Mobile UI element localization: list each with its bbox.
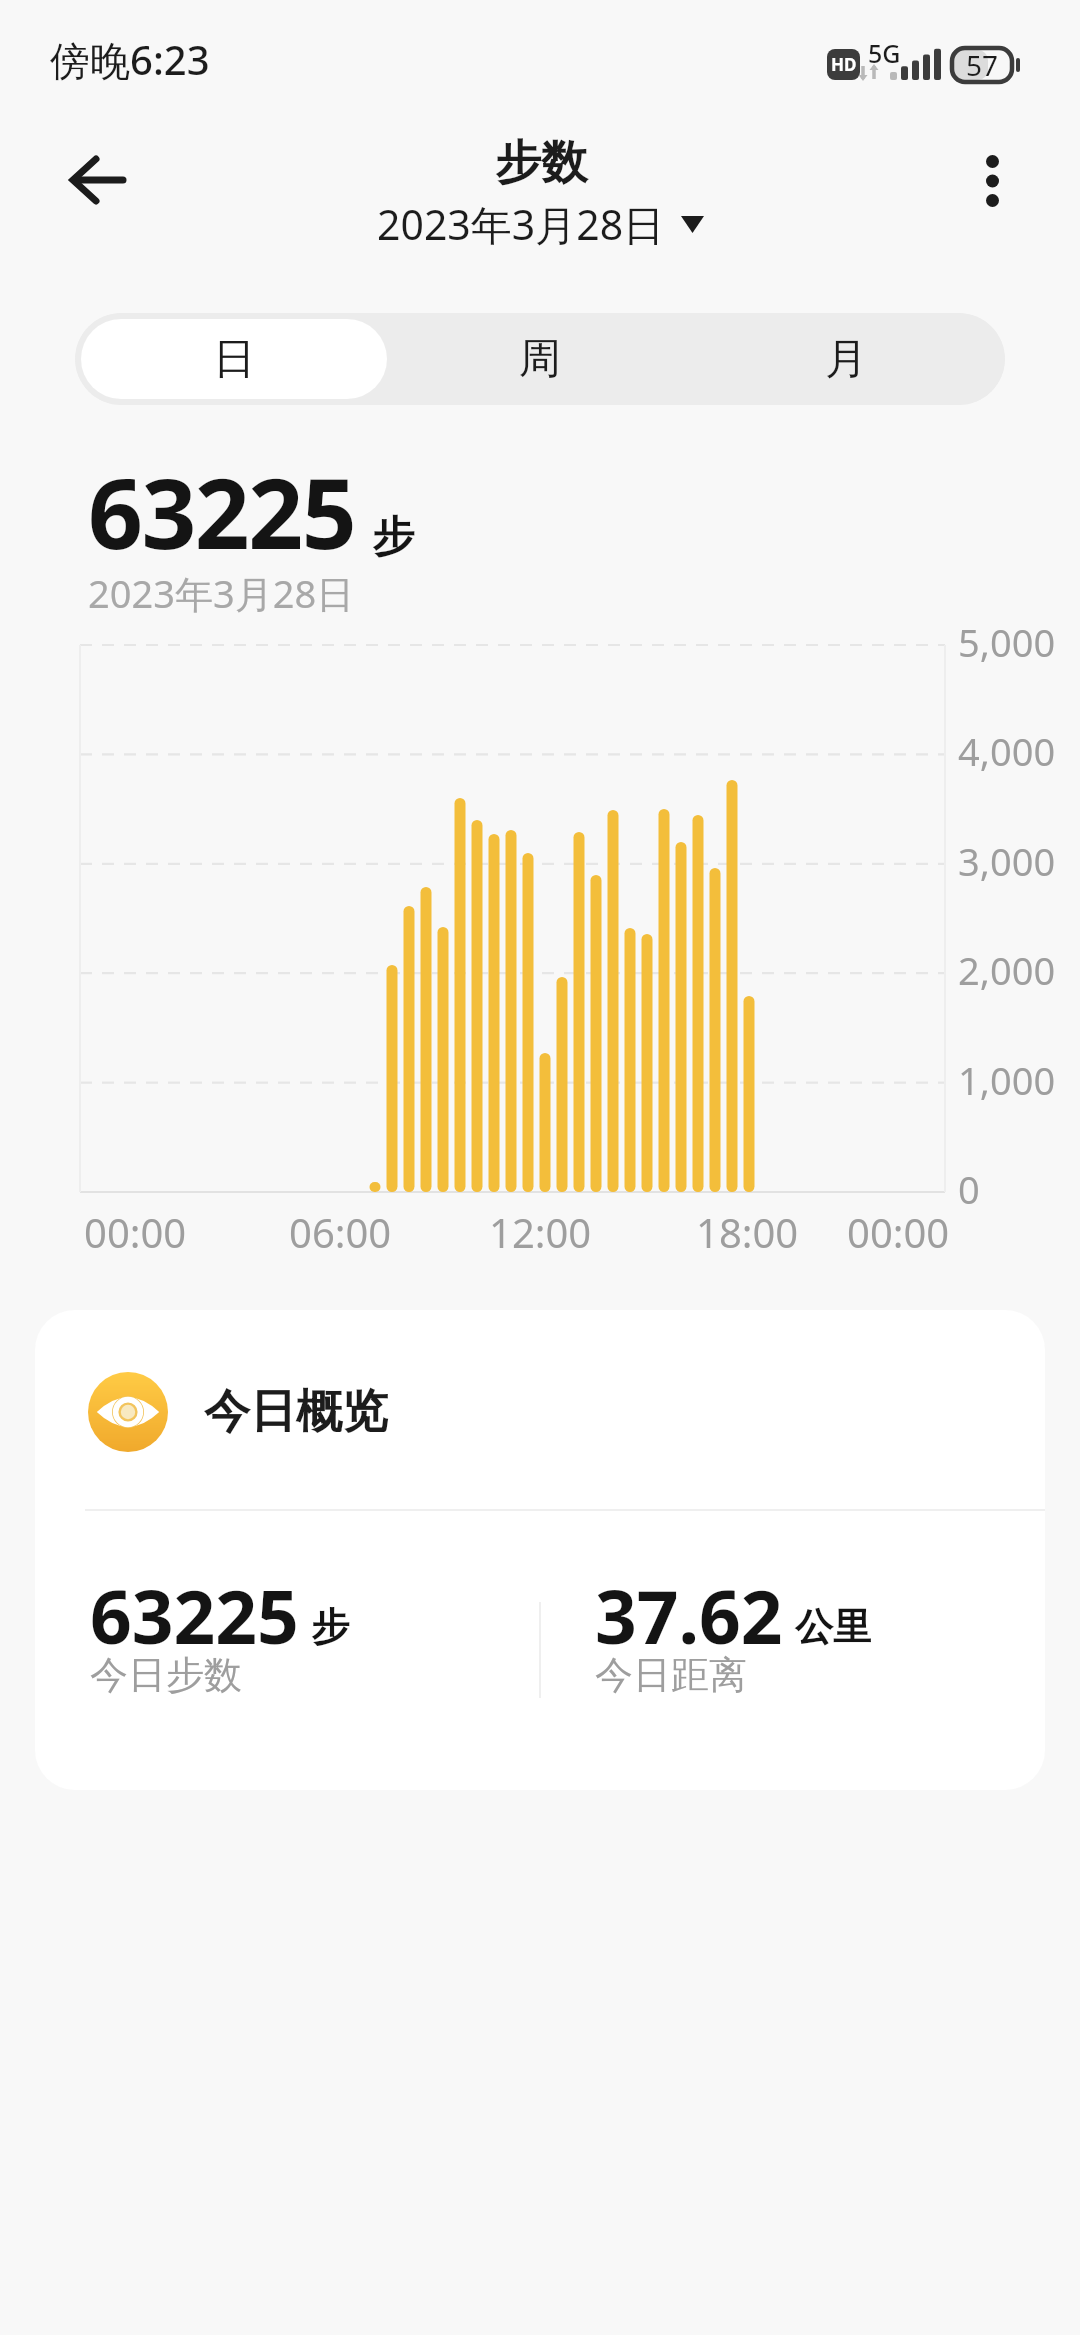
staticText: 3,000 bbox=[958, 835, 1056, 887]
staticText: 00:00 bbox=[847, 1205, 950, 1259]
staticText: 63225 bbox=[88, 446, 356, 577]
staticText: 57 bbox=[966, 46, 999, 84]
staticText: 2,000 bbox=[958, 944, 1056, 996]
staticText: 5,000 bbox=[958, 616, 1056, 668]
staticText: 5G bbox=[868, 36, 901, 70]
staticText: 月 bbox=[825, 333, 867, 386]
button[interactable]: 2023年3月28日 bbox=[377, 196, 704, 252]
button[interactable] bbox=[966, 155, 1018, 207]
staticText: 0 bbox=[958, 1163, 980, 1215]
staticText: 06:00 bbox=[289, 1205, 392, 1259]
staticText: 12:00 bbox=[489, 1205, 592, 1259]
staticText: 18:00 bbox=[696, 1205, 799, 1259]
staticText: 公里 bbox=[795, 1603, 871, 1651]
staticText: 步数 bbox=[495, 134, 587, 192]
button[interactable]: 周 bbox=[387, 319, 693, 399]
staticText: 4,000 bbox=[958, 725, 1056, 777]
staticText: 步 bbox=[372, 511, 414, 564]
staticText: 今日距离 bbox=[595, 1651, 747, 1699]
staticText: 2023年3月28日 bbox=[88, 567, 355, 619]
staticText: 1,000 bbox=[958, 1054, 1056, 1106]
staticText: 00:00 bbox=[84, 1205, 187, 1259]
button[interactable]: 月 bbox=[693, 319, 999, 399]
staticText: 今日概览 bbox=[204, 1383, 388, 1441]
staticText: 2023年3月28日 bbox=[377, 196, 665, 252]
staticText: 傍晚6:23 bbox=[50, 32, 210, 87]
staticText: HD bbox=[831, 53, 857, 76]
staticText: 今日步数 bbox=[90, 1651, 242, 1699]
staticText: 周 bbox=[519, 333, 561, 386]
staticText: 日 bbox=[213, 333, 255, 386]
staticText: 步 bbox=[311, 1603, 349, 1651]
button[interactable]: 今日概览 bbox=[35, 1310, 1045, 1790]
staticText: 63225 bbox=[90, 1566, 299, 1665]
staticText: 37.62 bbox=[595, 1566, 783, 1665]
button[interactable]: 日 bbox=[81, 319, 387, 399]
button[interactable] bbox=[58, 140, 138, 220]
